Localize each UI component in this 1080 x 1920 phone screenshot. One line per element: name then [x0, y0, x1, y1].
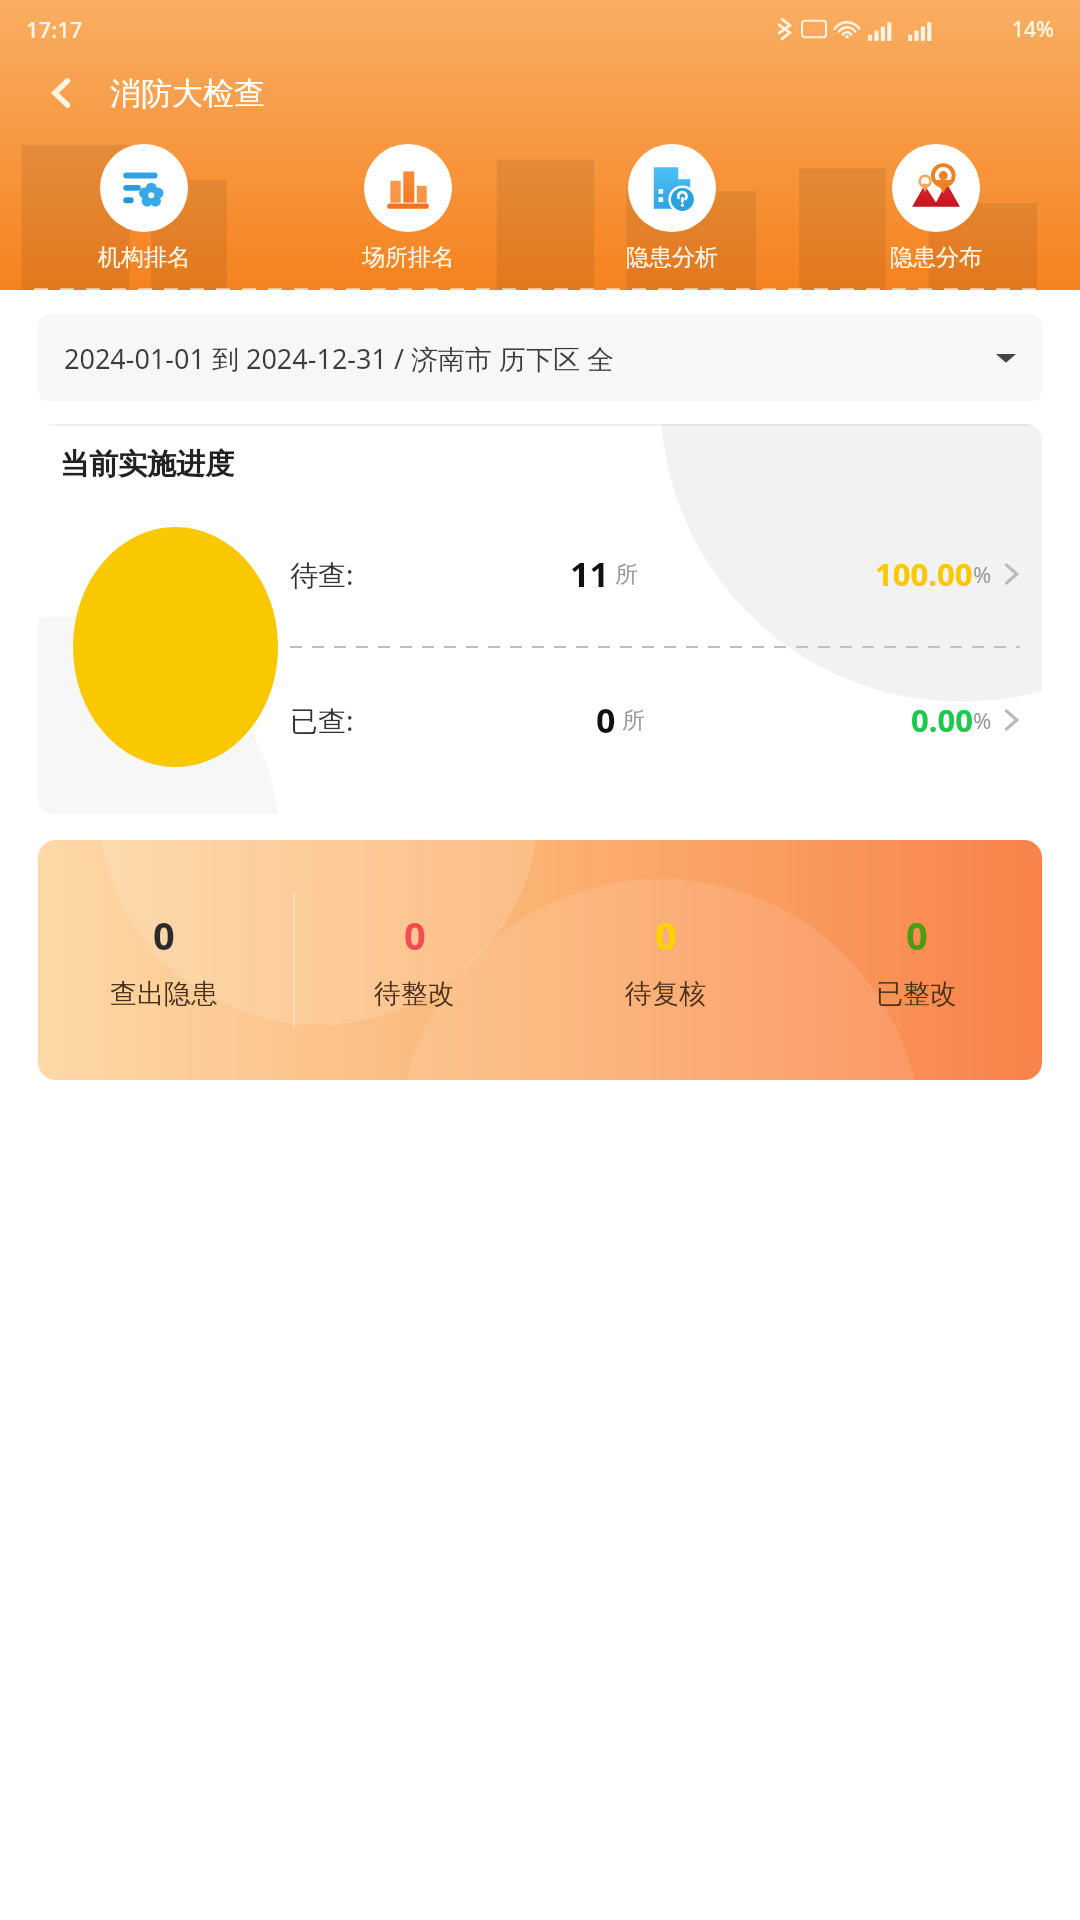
button[interactable]: 待查: — [290, 551, 1020, 597]
staticText: 查出隐患 — [110, 977, 218, 1011]
staticText: 11 — [570, 551, 609, 597]
staticText: 消防大检查 — [110, 74, 265, 113]
staticText: 场所排名 — [362, 243, 454, 272]
staticText: 100.00 — [875, 553, 973, 595]
staticText: 0 — [404, 909, 426, 961]
staticText: 0 — [655, 909, 677, 961]
staticText: 14% — [1012, 15, 1054, 44]
button[interactable]: 0 — [791, 840, 1042, 1080]
staticText: % — [973, 705, 992, 735]
button[interactable]: 隐患分布 — [804, 140, 1068, 276]
staticText: 隐患分布 — [890, 243, 982, 272]
staticText: 机构排名 — [98, 243, 190, 272]
staticText: 0 — [596, 697, 616, 743]
staticText: 当前实施进度 — [60, 446, 234, 483]
button[interactable]: 2024-01-01 到 2024-12-31 / 济南市 历下区 全 — [38, 314, 1042, 402]
staticText: 待复核 — [625, 977, 706, 1011]
staticText: 2024-01-01 到 2024-12-31 / 济南市 历下区 全 — [64, 340, 986, 377]
staticText: 0.00 — [911, 699, 973, 741]
staticText: 所 — [615, 560, 638, 589]
staticText: 待查: — [290, 555, 354, 593]
staticText: 待整改 — [374, 977, 455, 1011]
staticText: 隐患分析 — [626, 243, 718, 272]
button[interactable]: 已查: — [290, 697, 1020, 743]
button[interactable]: 机构排名 — [12, 140, 276, 276]
staticText: 0 — [153, 909, 175, 961]
staticText: 所 — [622, 706, 645, 735]
button[interactable]: 隐患分析 — [540, 140, 804, 276]
button[interactable]: 0 — [38, 840, 289, 1080]
staticText: 17:17 — [26, 14, 83, 44]
button[interactable]: Back — [34, 65, 90, 121]
staticText: % — [973, 559, 992, 589]
button[interactable]: 场所排名 — [276, 140, 540, 276]
staticText: 0 — [906, 909, 928, 961]
staticText: 已查: — [290, 701, 354, 739]
button[interactable]: 0 — [289, 840, 540, 1080]
button[interactable]: 0 — [540, 840, 791, 1080]
staticText: 已整改 — [876, 977, 957, 1011]
